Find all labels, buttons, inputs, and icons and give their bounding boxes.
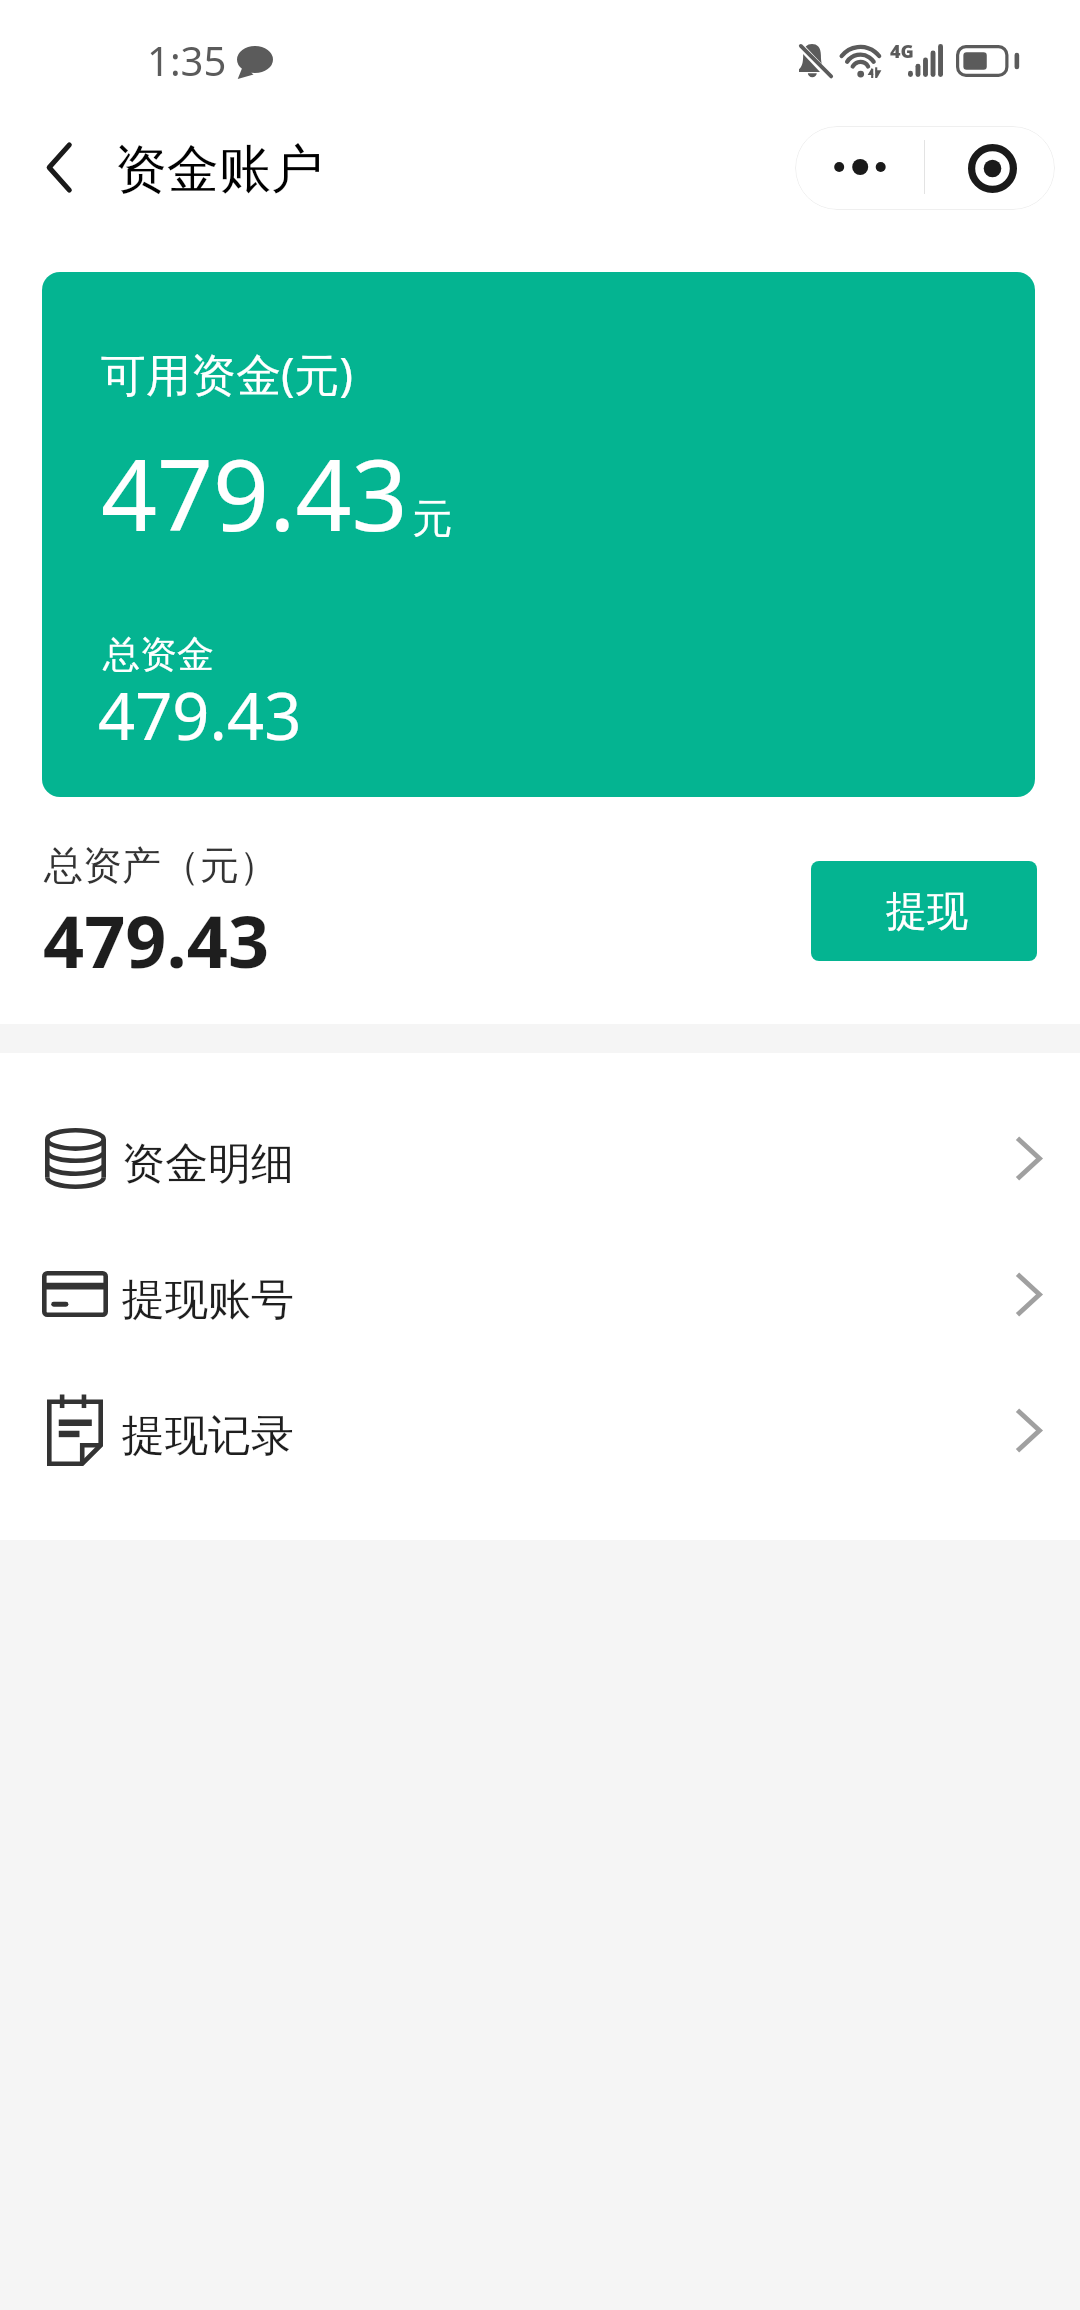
- button[interactable]: 提现: [811, 861, 1037, 961]
- staticText: 资金账户: [115, 137, 323, 203]
- staticText: 元: [412, 493, 452, 543]
- staticText: 479.43: [98, 671, 302, 760]
- button[interactable]: 返回: [16, 124, 102, 210]
- button[interactable]: 提现账号: [0, 1226, 1080, 1362]
- staticText: 可用资金(元): [101, 343, 354, 404]
- staticText: 总资金: [103, 631, 214, 678]
- staticText: 479.43: [43, 891, 270, 989]
- staticText: 1:35: [147, 33, 227, 87]
- button[interactable]: 提现记录: [0, 1362, 1080, 1498]
- staticText: 479.43: [101, 426, 408, 559]
- staticText: 4G: [890, 39, 914, 64]
- staticText: 提现: [886, 886, 968, 938]
- button[interactable]: 更多: [795, 126, 1055, 210]
- staticText: 提现账号: [122, 1273, 294, 1327]
- staticText: 总资产（元）: [44, 841, 278, 890]
- button[interactable]: 资金明细: [0, 1090, 1080, 1226]
- staticText: 提现记录: [122, 1409, 294, 1463]
- staticText: 资金明细: [122, 1137, 294, 1191]
